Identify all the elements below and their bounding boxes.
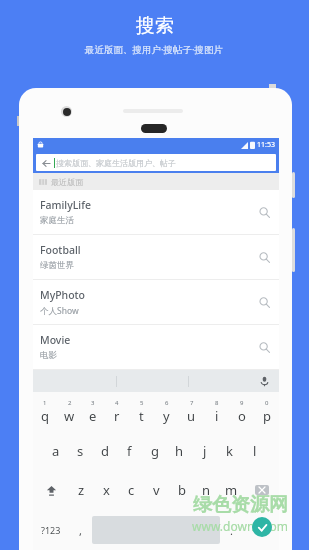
staticText: q xyxy=(41,407,49,425)
staticText: k xyxy=(226,442,233,460)
staticText: ?123 xyxy=(41,524,61,536)
staticText: l xyxy=(253,442,257,460)
button[interactable]: Back xyxy=(40,157,52,169)
staticText: 0 xyxy=(265,399,269,407)
button[interactable]: 0 xyxy=(254,392,279,431)
button[interactable]: 4 xyxy=(105,392,129,431)
button[interactable]: Backspace xyxy=(244,470,279,510)
button[interactable]: x xyxy=(94,470,119,510)
staticText: p xyxy=(263,407,271,425)
button[interactable]: Shift xyxy=(33,470,69,510)
button[interactable]: Search Movie xyxy=(251,334,277,360)
button[interactable]: Movie xyxy=(33,325,279,369)
button[interactable]: ?123 xyxy=(33,510,69,550)
staticText: 电影 xyxy=(40,350,57,361)
staticText: i xyxy=(215,407,219,425)
button[interactable]: s xyxy=(68,431,92,470)
button[interactable]: 3 xyxy=(81,392,105,431)
staticText: e xyxy=(89,407,97,425)
button[interactable]: j xyxy=(192,431,217,470)
staticText: 搜索 xyxy=(136,14,174,38)
button[interactable]: m xyxy=(219,470,244,510)
button[interactable]: Search FamilyLife xyxy=(251,199,277,225)
staticText: 9 xyxy=(240,399,244,407)
staticText: . xyxy=(230,523,233,538)
button[interactable]: Football xyxy=(33,235,279,279)
button[interactable]: Voice input xyxy=(256,373,272,389)
button[interactable]: 8 xyxy=(204,392,229,431)
staticText: MyPhoto xyxy=(40,288,86,302)
staticText: z xyxy=(78,481,85,499)
button[interactable]: z xyxy=(69,470,94,510)
button[interactable]: Back xyxy=(36,154,276,171)
button[interactable]: MyPhoto xyxy=(33,280,279,324)
button[interactable]: FamilyLife xyxy=(33,190,279,234)
staticText: f xyxy=(127,442,132,460)
button[interactable]: f xyxy=(117,431,142,470)
staticText: x xyxy=(103,481,110,499)
staticText: 家庭生活 xyxy=(40,215,74,226)
button[interactable]: 2 xyxy=(57,392,81,431)
staticText: 绿茵世界 xyxy=(40,260,74,271)
staticText: Football xyxy=(40,243,81,257)
button[interactable]: 6 xyxy=(154,392,179,431)
staticText: o xyxy=(238,407,246,425)
button[interactable]: k xyxy=(217,431,242,470)
staticText: 11:53 xyxy=(257,140,275,150)
button[interactable]: . xyxy=(220,510,243,550)
staticText: 个人Show xyxy=(40,305,79,317)
staticText: a xyxy=(52,442,60,460)
staticText: d xyxy=(101,442,109,460)
button[interactable]: v xyxy=(144,470,169,510)
button[interactable]: h xyxy=(167,431,192,470)
button[interactable]: 最近版面 xyxy=(33,173,279,190)
button[interactable]: a xyxy=(44,431,68,470)
staticText: h xyxy=(175,442,184,460)
button[interactable]: b xyxy=(169,470,194,510)
staticText: 5 xyxy=(140,399,144,407)
button[interactable]: Enter xyxy=(243,510,279,550)
staticText: b xyxy=(178,481,186,499)
staticText: y xyxy=(163,407,170,425)
staticText: g xyxy=(151,442,159,460)
button[interactable]: 5 xyxy=(129,392,154,431)
button[interactable]: c xyxy=(119,470,144,510)
staticText: v xyxy=(153,481,160,499)
staticText: 最近版面、搜用户·搜帖子·搜图片 xyxy=(85,43,224,56)
staticText: r xyxy=(114,407,120,425)
staticText: j xyxy=(203,442,207,460)
button[interactable]: l xyxy=(242,431,267,470)
staticText: m xyxy=(225,481,238,499)
staticText: , xyxy=(79,523,82,538)
staticText: 搜索版面、家庭生活版用户、帖子 xyxy=(56,158,176,168)
staticText: w xyxy=(64,407,75,425)
button[interactable]: Search MyPhoto xyxy=(251,289,277,315)
staticText: 8 xyxy=(215,399,219,407)
button[interactable]: 7 xyxy=(179,392,204,431)
staticText: 7 xyxy=(190,399,194,407)
staticText: c xyxy=(128,481,135,499)
staticText: u xyxy=(187,407,196,425)
button[interactable]: Space xyxy=(92,516,220,544)
button[interactable]: 9 xyxy=(229,392,254,431)
staticText: FamilyLife xyxy=(40,198,91,212)
staticText: t xyxy=(139,407,144,425)
staticText: 6 xyxy=(165,399,169,407)
button[interactable]: d xyxy=(92,431,117,470)
staticText: 1 xyxy=(43,399,47,407)
button[interactable]: 1 xyxy=(33,392,57,431)
staticText: 绿色资源网 xyxy=(193,493,288,517)
staticText: 4 xyxy=(115,399,119,407)
staticText: n xyxy=(202,481,211,499)
button[interactable]: n xyxy=(194,470,219,510)
staticText: www.downc .om xyxy=(192,518,288,534)
button[interactable]: , xyxy=(69,510,92,550)
button[interactable]: Search Football xyxy=(251,244,277,270)
staticText: s xyxy=(77,442,84,460)
staticText: 最近版面 xyxy=(51,177,83,187)
button[interactable]: g xyxy=(142,431,167,470)
staticText: 3 xyxy=(91,399,95,407)
staticText: Movie xyxy=(40,333,71,347)
staticText: 2 xyxy=(68,399,72,407)
